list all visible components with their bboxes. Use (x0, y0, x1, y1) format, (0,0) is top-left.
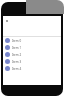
button[interactable]: Back (5, 19, 9, 23)
staticText: Item 3 (12, 60, 22, 64)
staticText: Item 1 (12, 46, 22, 50)
staticText: Item 4 (12, 67, 22, 71)
button[interactable]: Item 3 (3, 58, 61, 65)
button[interactable]: Item 4 (3, 65, 61, 72)
button[interactable]: Item 0 (3, 37, 61, 44)
button[interactable]: Item 1 (3, 44, 61, 51)
staticText: Item 0 (12, 39, 22, 43)
button[interactable]: Item 2 (3, 51, 61, 58)
staticText: Item 2 (12, 53, 22, 57)
